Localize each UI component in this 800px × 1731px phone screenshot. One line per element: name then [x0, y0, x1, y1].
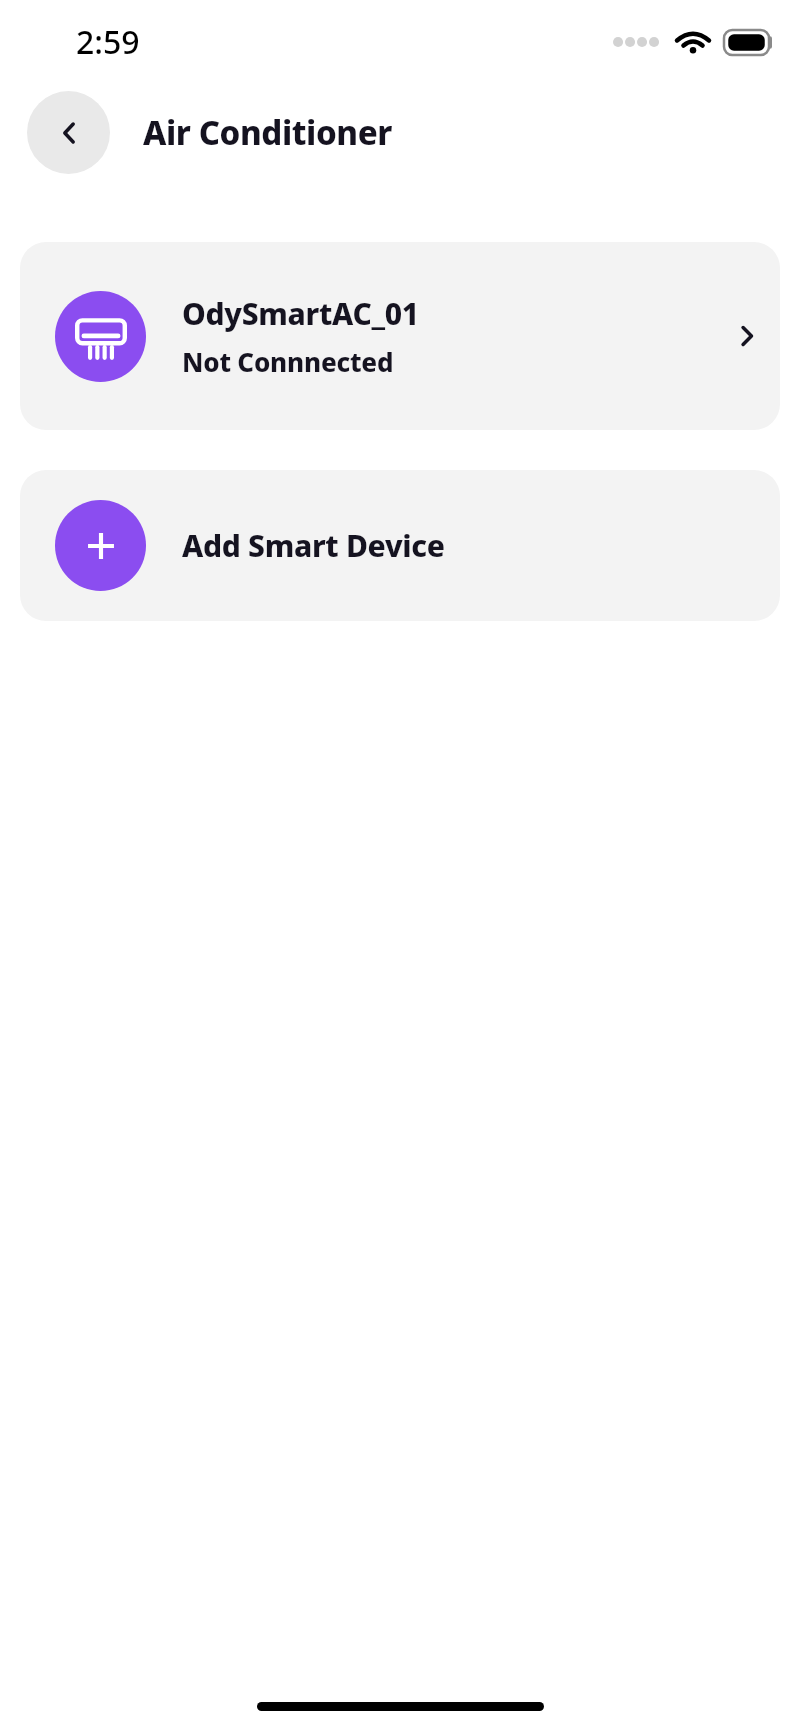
button[interactable]: Add Smart Device [20, 470, 780, 621]
staticText: Air Conditioner [143, 110, 393, 155]
staticText: Add Smart Device [182, 525, 445, 566]
button[interactable]: Back [27, 91, 110, 174]
staticText: Not Connnected [182, 344, 394, 379]
staticText: OdySmartAC_01 [182, 293, 419, 334]
button[interactable]: OdySmartAC_01 [20, 242, 780, 430]
staticText: 2:59 [76, 20, 140, 64]
